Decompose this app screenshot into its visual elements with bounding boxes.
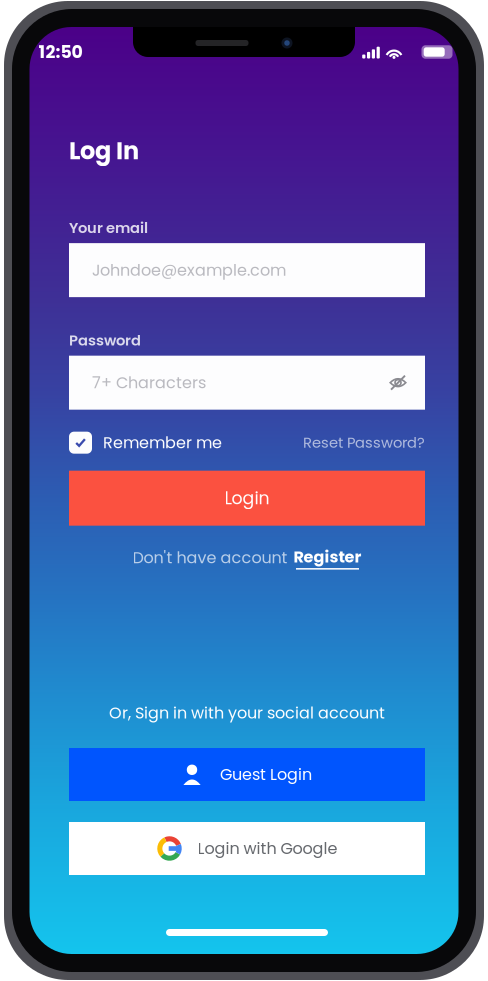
staticText: Register	[293, 546, 361, 568]
staticText: Don't have account	[132, 546, 287, 569]
button[interactable]: Don't have account	[132, 546, 361, 570]
staticText: Guest Login	[220, 763, 312, 786]
button[interactable]: Login	[69, 471, 425, 526]
staticText: Reset Password?	[303, 432, 425, 453]
button[interactable]: Guest Login	[69, 748, 425, 801]
staticText: Remember me	[103, 431, 222, 454]
staticText: Your email	[69, 218, 148, 238]
staticText: Or, Sign in with your social account	[109, 702, 385, 724]
staticText: Password	[69, 330, 141, 351]
button[interactable]: Reset Password?	[303, 432, 425, 453]
staticText: Johndoe@example.com	[92, 259, 286, 281]
staticText: Log In	[69, 134, 139, 168]
staticText: Login with Google	[197, 837, 337, 860]
staticText: 12:50	[38, 40, 82, 64]
staticText: 7+ Characters	[92, 371, 206, 394]
staticText: Login	[224, 486, 269, 510]
button[interactable]: Remember me	[69, 431, 222, 454]
button[interactable]: Login with Google	[69, 822, 425, 875]
